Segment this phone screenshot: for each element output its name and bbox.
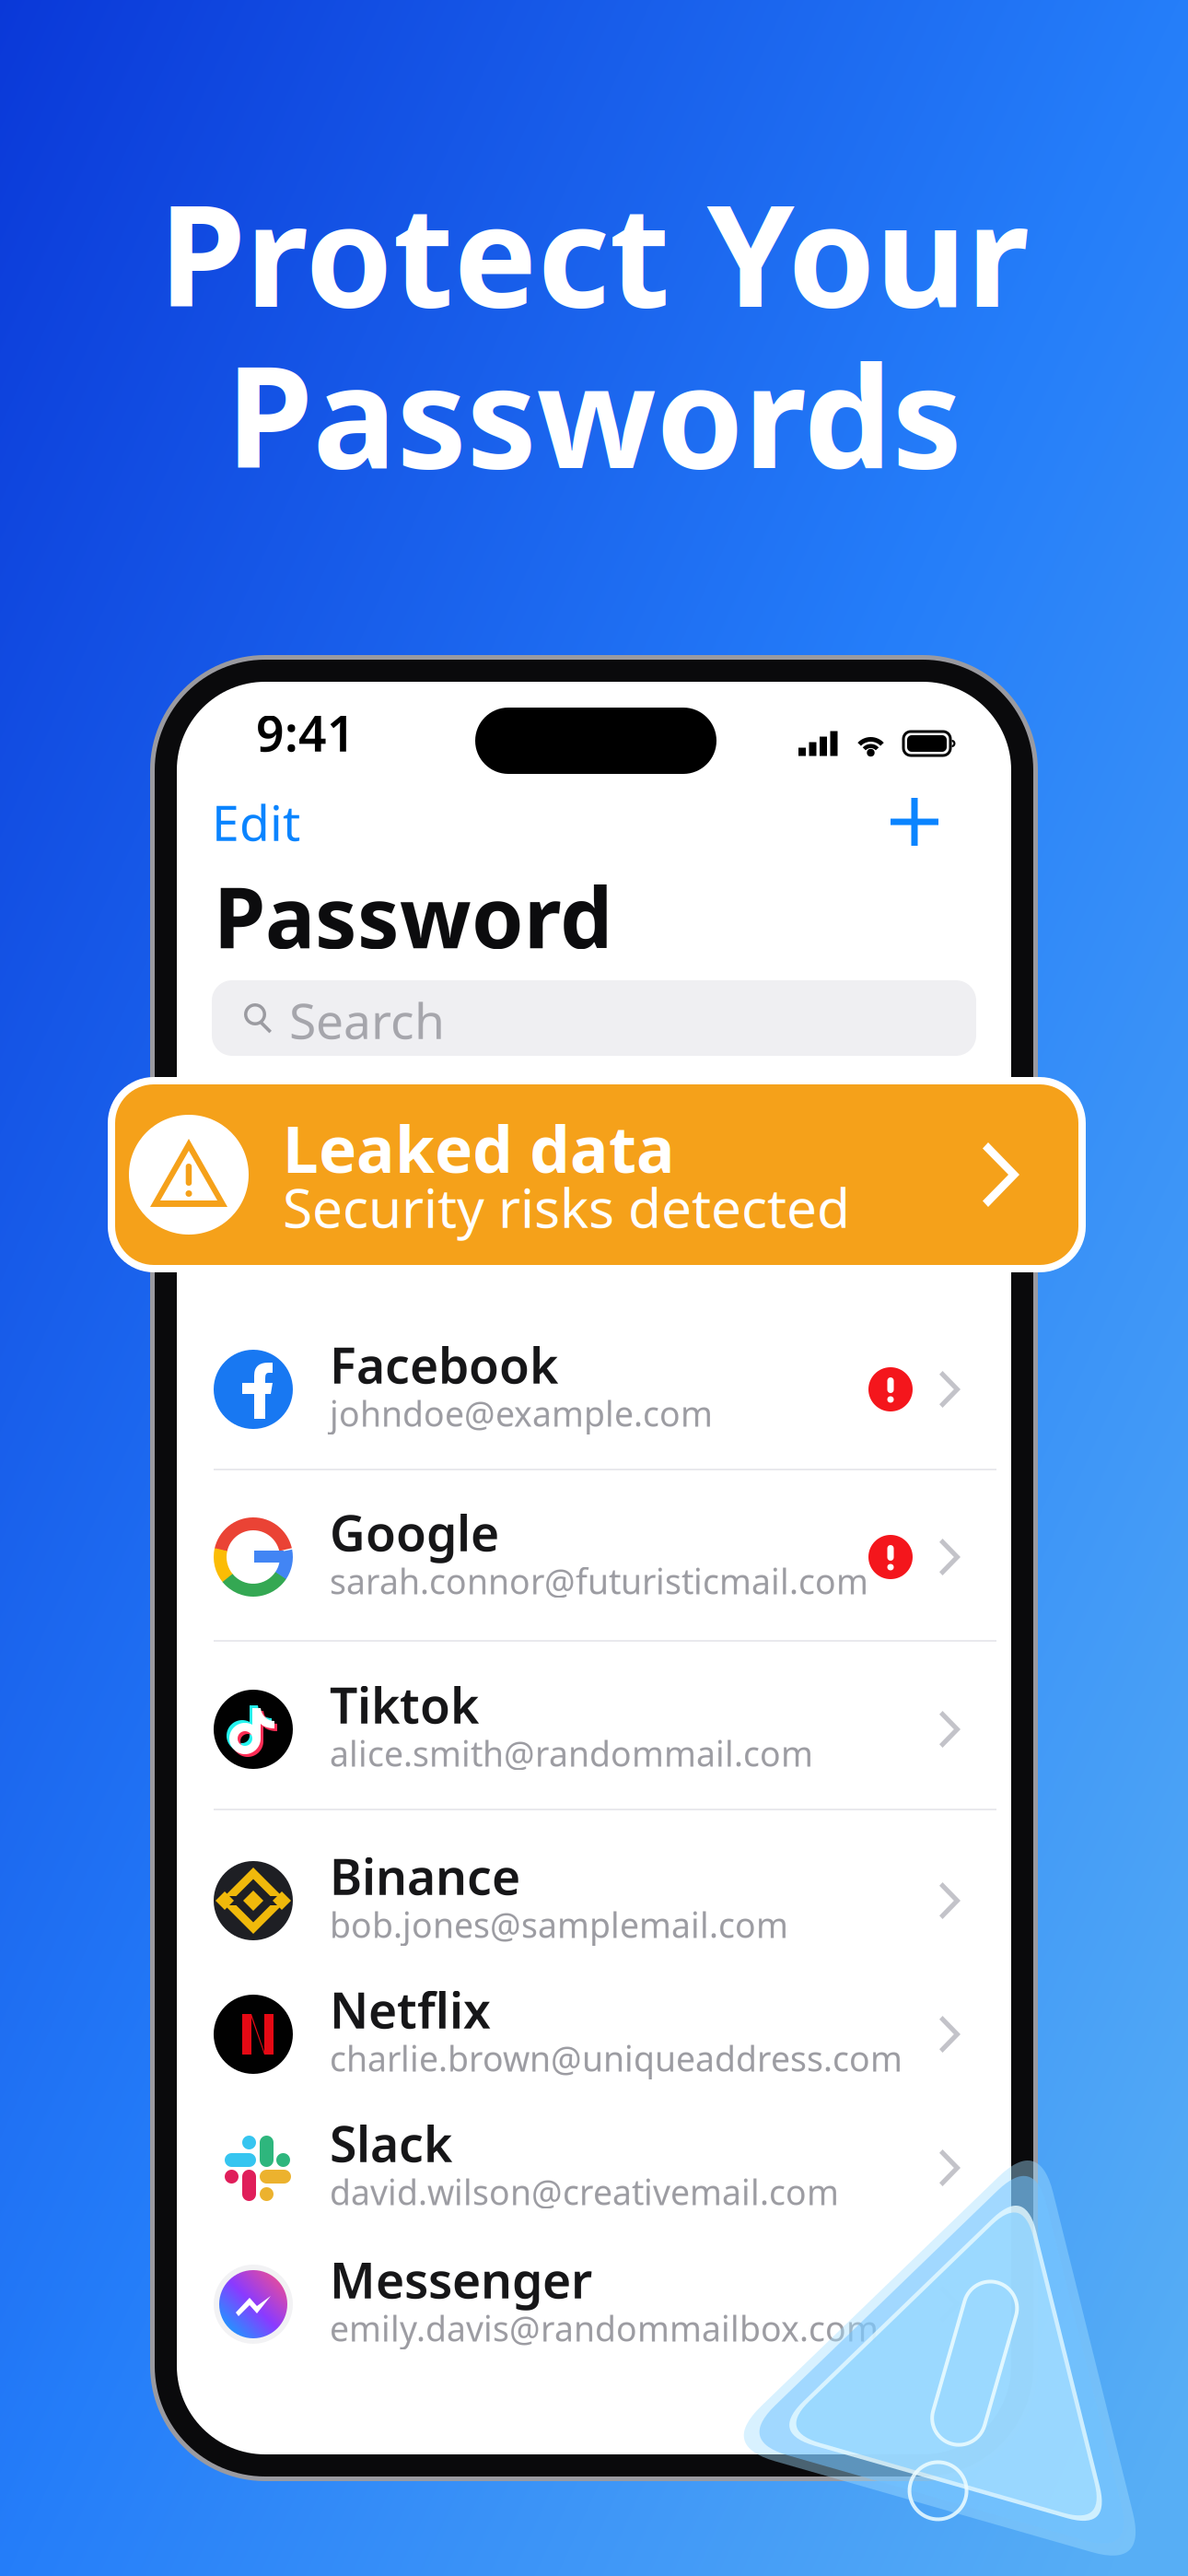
staticText: 9:41 [256,700,355,765]
button[interactable]: Tiktok [177,1665,1011,1794]
staticText: Leaked data [283,1106,675,1190]
staticText: sarah.connor@futuristicmail.com [330,1558,868,1604]
staticText: Tiktok [330,1672,479,1737]
button[interactable]: Search [212,980,976,1056]
staticText: Protect Your [159,159,1029,345]
staticText: Facebook [330,1332,558,1397]
staticText: Passwords [226,321,962,507]
button[interactable]: Netflix [177,1970,1011,2099]
staticText: Slack [330,2110,452,2176]
staticText: bob.jones@samplemail.com [330,1902,788,1947]
staticText: Search [289,987,445,1053]
staticText: david.wilson@creativemail.com [330,2169,839,2215]
button[interactable]: Leaked data [108,1077,1086,1272]
staticText: charlie.brown@uniqueaddress.com [330,2035,903,2081]
button[interactable]: Edit [212,790,350,853]
button[interactable]: Google [177,1493,1011,1622]
button[interactable]: Facebook [177,1325,1011,1454]
staticText: Messenger [330,2247,592,2312]
staticText: emily.davis@randommailbox.com [330,2305,879,2351]
staticText: Password [214,860,612,971]
staticText: Google [330,1500,499,1565]
staticText: Edit [212,789,300,854]
button[interactable]: Slack [177,2103,1011,2232]
button[interactable]: Add password [877,784,952,860]
staticText: alice.smith@randommail.com [330,1730,813,1776]
button[interactable]: Binance [177,1836,1011,1965]
button[interactable]: Messenger [177,2240,1011,2369]
staticText: Security risks detected [283,1171,850,1243]
staticText: johndoe@example.com [330,1390,713,1436]
staticText: Netflix [330,1977,491,2042]
staticText: Binance [330,1843,520,1908]
